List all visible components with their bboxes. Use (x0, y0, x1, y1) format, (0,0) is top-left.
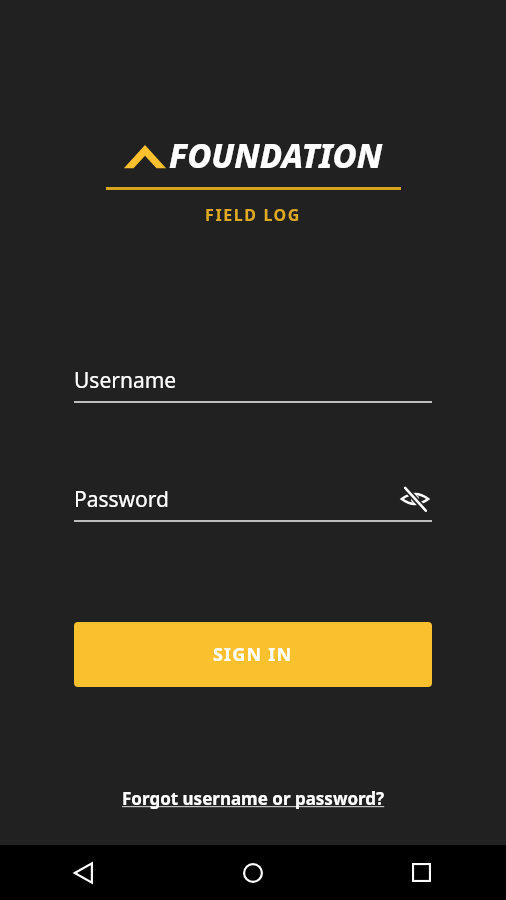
staticText: Forgot username or password? (122, 787, 385, 810)
button[interactable]: SIGN IN (74, 622, 432, 687)
staticText: FIELD LOG (205, 204, 302, 226)
staticText: Password (74, 485, 169, 514)
button[interactable]: Home (168, 845, 337, 900)
button[interactable]: Show password (398, 482, 432, 516)
button[interactable]: Back (0, 845, 168, 900)
staticText: FOUNDATION (169, 133, 383, 178)
button[interactable]: Password (74, 485, 432, 522)
staticText: SIGN IN (213, 642, 293, 667)
button[interactable]: Username (74, 366, 432, 403)
button[interactable]: Forgot username or password? (116, 784, 391, 813)
button[interactable]: Recents (337, 845, 506, 900)
staticText: Username (74, 366, 177, 395)
